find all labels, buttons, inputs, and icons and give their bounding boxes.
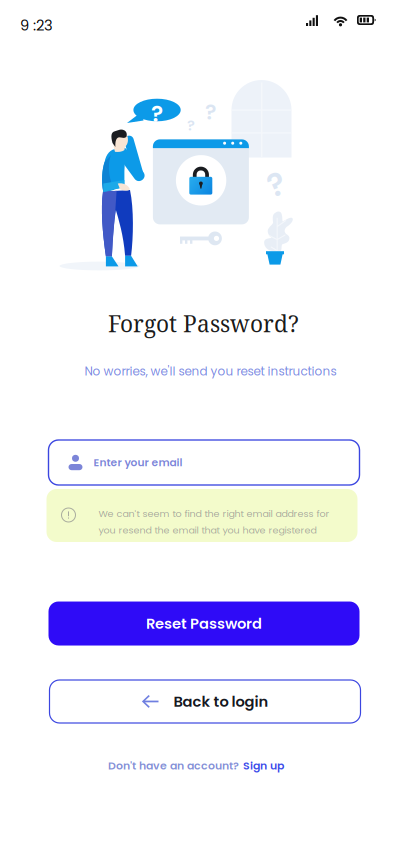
staticText: Reset Password <box>146 613 262 634</box>
staticText: Forgot Password? <box>108 308 299 339</box>
staticText: No worries, we'll send you reset instruc… <box>84 363 336 380</box>
button[interactable]: Enter your email <box>48 440 359 485</box>
button[interactable]: Reset Password <box>48 601 359 645</box>
staticText: Back to login <box>173 691 268 712</box>
staticText: ? <box>151 98 163 130</box>
button[interactable]: Back to login <box>49 680 360 723</box>
staticText: We can't seem to find the right email ad… <box>98 507 329 520</box>
staticText: ? <box>268 162 285 207</box>
button[interactable]: Don't have an account? <box>108 758 284 773</box>
staticText: ? <box>205 97 216 127</box>
staticText: Don't have an account? <box>108 758 239 773</box>
staticText: Enter your email <box>93 455 182 470</box>
staticText: ? <box>187 115 195 135</box>
staticText: you resend the email that you have regis… <box>98 523 316 537</box>
staticText: 9 :23 <box>20 15 53 35</box>
staticText: Sign up <box>243 758 284 773</box>
